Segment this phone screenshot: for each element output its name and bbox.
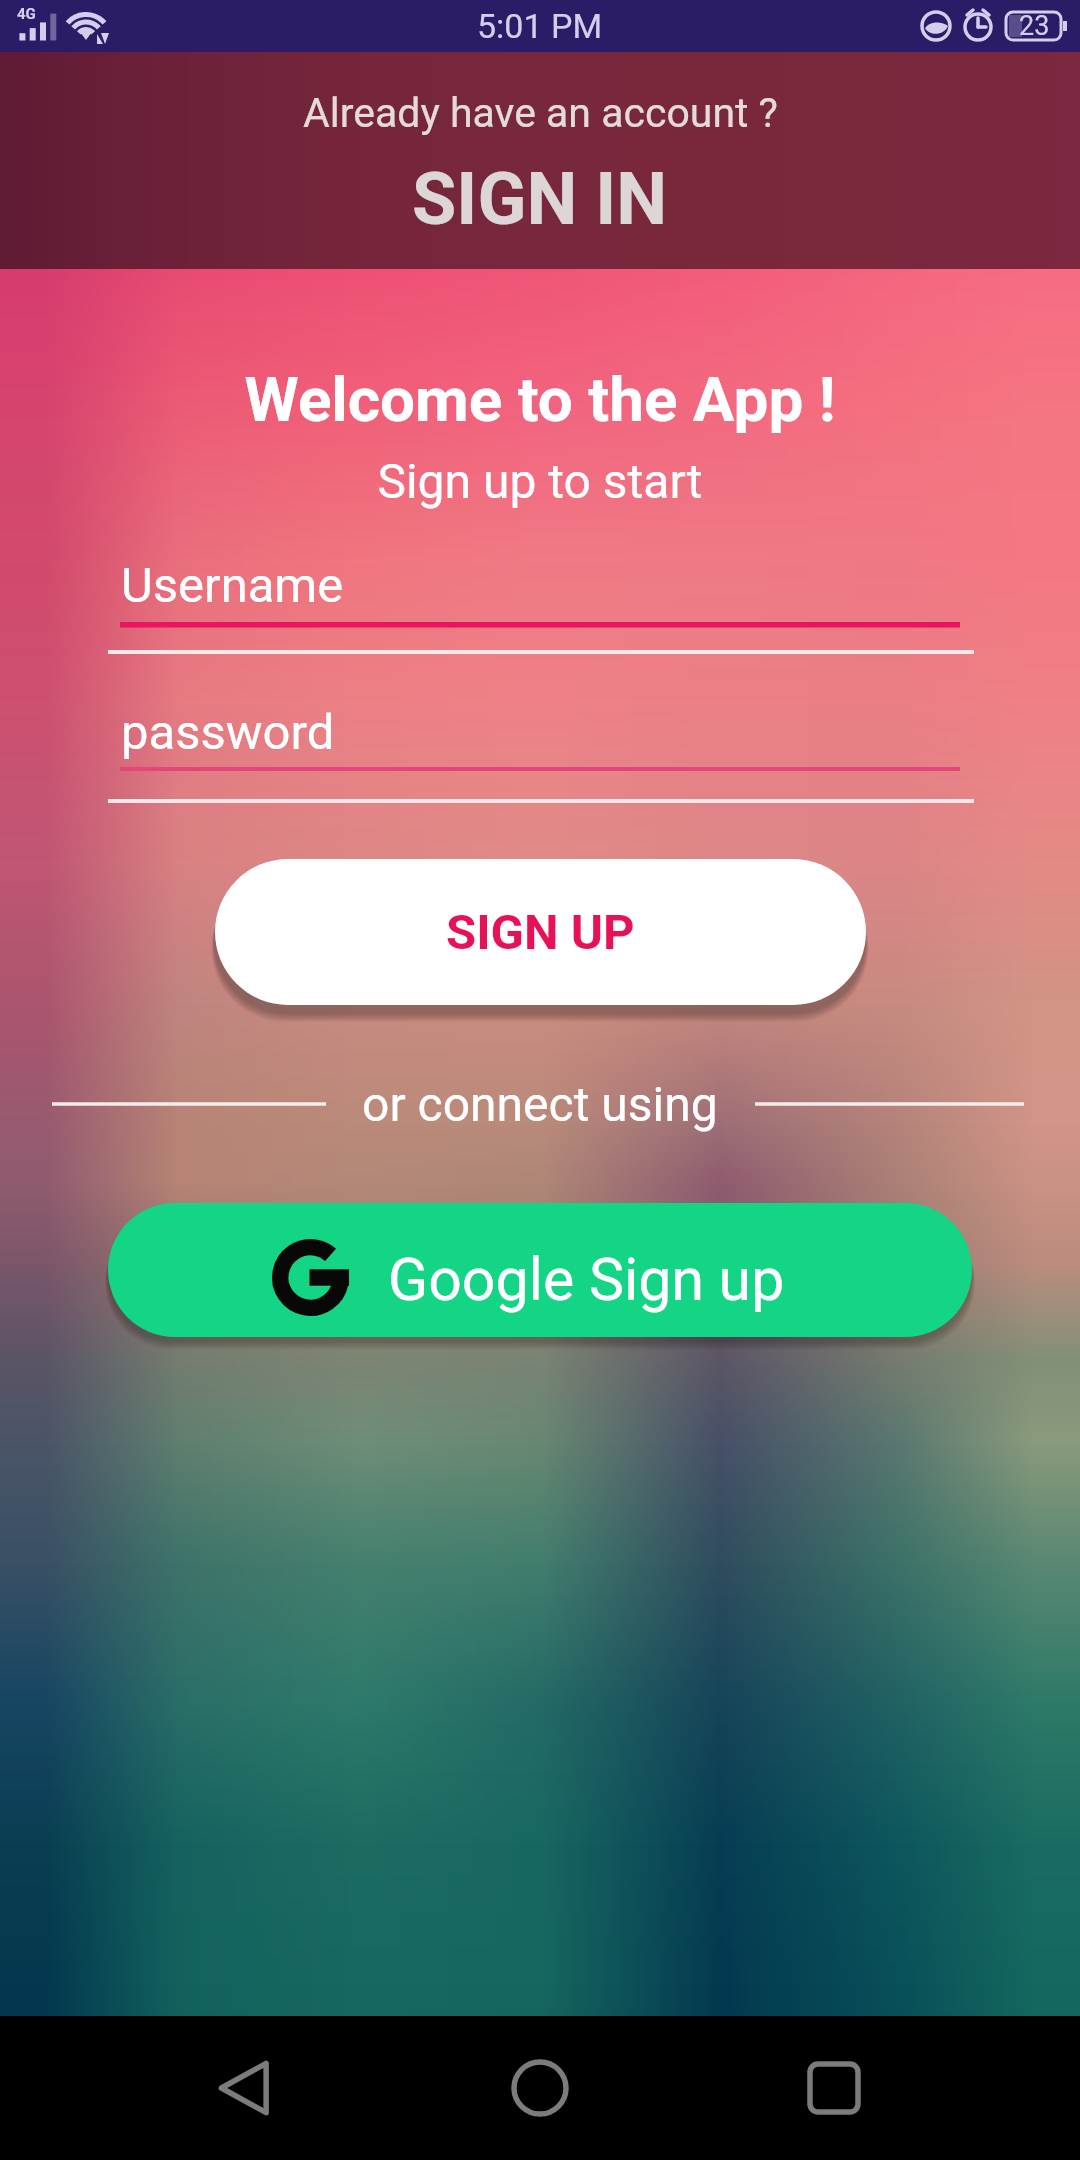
staticText: SIGN IN [412, 157, 668, 241]
staticText: password [121, 704, 335, 761]
button[interactable]: SIGN UP [215, 859, 866, 1005]
staticText: SIGN UP [446, 904, 635, 961]
staticText: Google Sign up [388, 1245, 785, 1314]
staticText: 4G [17, 5, 36, 23]
button[interactable]: Recent apps [774, 2028, 894, 2148]
button[interactable]: Google Sign up [108, 1203, 972, 1337]
staticText: Username [121, 557, 344, 614]
staticText: 5:01 PM [477, 6, 603, 46]
button[interactable]: Back [186, 2028, 306, 2148]
staticText: Sign up to start [0, 453, 1080, 509]
button[interactable]: Already have an account ? [0, 52, 1080, 269]
button[interactable]: Home [480, 2028, 600, 2148]
staticText: or connect using [362, 1076, 718, 1132]
staticText: Welcome to the App ! [0, 363, 1080, 436]
staticText: 23 [1019, 10, 1050, 42]
staticText: Already have an account ? [303, 89, 778, 137]
